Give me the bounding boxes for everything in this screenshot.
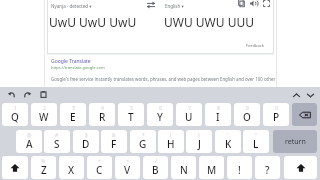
- button[interactable]: Nyanja - detected ▾: [51, 3, 92, 9]
- button[interactable]: 2: [31, 103, 57, 126]
- button[interactable]: Fullscreen: [262, 0, 271, 8]
- staticText: W: [39, 110, 49, 124]
- button[interactable]: 3: [60, 103, 86, 126]
- staticText: !: [238, 163, 241, 177]
- staticText: R: [99, 110, 106, 124]
- staticText: +: [98, 158, 101, 165]
- button[interactable]: Google Translate: [51, 58, 91, 65]
- button[interactable]: ;: [171, 156, 196, 179]
- staticText: 3: [72, 105, 75, 112]
- staticText: %: [41, 158, 46, 165]
- staticText: https://translate.google.com: [51, 65, 105, 70]
- staticText: return: [285, 137, 306, 147]
- staticText: X: [68, 163, 75, 177]
- staticText: U: [185, 110, 193, 124]
- button[interactable]: 9: [234, 103, 260, 126]
- button[interactable]: &: [101, 130, 127, 153]
- button[interactable]: ,: [227, 156, 252, 179]
- staticText: .: [267, 158, 269, 165]
- staticText: &: [112, 132, 116, 139]
- staticText: G: [139, 137, 147, 151]
- button[interactable]: 6: [147, 103, 173, 126]
- button[interactable]: /: [143, 156, 168, 179]
- button[interactable]: Next field: [305, 90, 316, 101]
- button[interactable]: Redo: [23, 90, 32, 99]
- staticText: J: [198, 137, 201, 151]
- staticText: S: [54, 137, 60, 151]
- staticText: #: [55, 132, 59, 139]
- button[interactable]: =: [115, 156, 140, 179]
- staticText: ): [198, 132, 200, 139]
- button[interactable]: *: [130, 130, 156, 153]
- staticText: -: [71, 158, 73, 165]
- button[interactable]: Paste: [39, 90, 48, 99]
- staticText: @: [27, 132, 32, 139]
- button[interactable]: Backspace: [292, 103, 317, 126]
- button[interactable]: 5: [118, 103, 144, 126]
- staticText: 2: [43, 105, 46, 112]
- button[interactable]: (: [158, 130, 184, 153]
- staticText: B: [152, 163, 159, 177]
- staticText: N: [180, 163, 188, 177]
- button[interactable]: :: [199, 156, 224, 179]
- button[interactable]: Copy translation: [237, 0, 246, 8]
- staticText: Q: [11, 110, 19, 124]
- staticText: =: [126, 158, 129, 165]
- staticText: UwU UwU UwU: [49, 14, 137, 30]
- staticText: O: [243, 110, 251, 124]
- button[interactable]: Previous field: [291, 90, 302, 101]
- staticText: K: [225, 137, 232, 151]
- staticText: 5: [130, 105, 133, 112]
- staticText: ,: [239, 158, 241, 165]
- button[interactable]: .: [255, 156, 280, 179]
- button[interactable]: Listen: [249, 0, 258, 8]
- button[interactable]: return: [273, 130, 317, 153]
- button[interactable]: Feedback: [246, 43, 264, 48]
- staticText: M: [207, 163, 217, 177]
- staticText: 8: [217, 105, 220, 112]
- button[interactable]: Shift: [284, 156, 317, 179]
- button[interactable]: 4: [89, 103, 115, 126]
- staticText: F: [111, 137, 117, 151]
- staticText: ?: [265, 163, 270, 177]
- button[interactable]: -: [59, 156, 84, 179]
- button[interactable]: Swap languages: [146, 0, 156, 10]
- staticText: L: [253, 137, 259, 151]
- button[interactable]: ): [186, 130, 212, 153]
- button[interactable]: @: [16, 130, 42, 153]
- button[interactable]: $: [73, 130, 99, 153]
- staticText: A: [26, 137, 33, 151]
- staticText: ": [255, 132, 258, 139]
- button[interactable]: 8: [205, 103, 231, 126]
- staticText: Google's free service instantly translat…: [51, 76, 276, 82]
- staticText: E: [70, 110, 76, 124]
- staticText: 4: [101, 105, 104, 112]
- staticText: 7: [188, 105, 191, 112]
- button[interactable]: Undo: [7, 90, 16, 99]
- staticText: 0: [275, 105, 278, 112]
- button[interactable]: 1: [2, 103, 28, 126]
- staticText: ': [227, 132, 229, 139]
- button[interactable]: #: [44, 130, 70, 153]
- staticText: UWU UWU UUU: [164, 14, 254, 30]
- staticText: T: [128, 110, 134, 124]
- staticText: Z: [41, 163, 47, 177]
- staticText: V: [124, 163, 131, 177]
- staticText: Y: [157, 110, 163, 124]
- staticText: 1: [14, 105, 17, 112]
- staticText: 6: [159, 105, 162, 112]
- button[interactable]: ": [243, 130, 269, 153]
- button[interactable]: Shift: [2, 156, 28, 179]
- staticText: P: [273, 110, 280, 124]
- staticText: /: [155, 158, 157, 165]
- staticText: C: [96, 163, 103, 177]
- staticText: H: [167, 137, 175, 151]
- button[interactable]: ': [215, 130, 241, 153]
- button[interactable]: +: [87, 156, 112, 179]
- button[interactable]: %: [31, 156, 56, 179]
- button[interactable]: 7: [176, 103, 202, 126]
- staticText: (: [170, 132, 172, 139]
- staticText: 9: [246, 105, 249, 112]
- button[interactable]: English ▾: [165, 3, 184, 9]
- button[interactable]: 0: [263, 103, 289, 126]
